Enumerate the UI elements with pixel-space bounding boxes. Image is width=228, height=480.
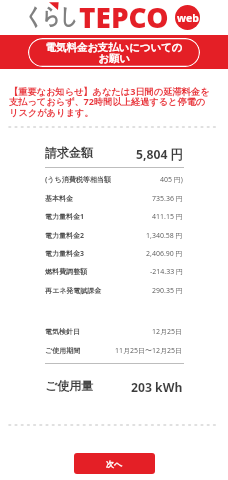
staticText: (うち消費税等相当額	[45, 175, 111, 185]
staticText: 請求金額	[45, 145, 93, 160]
staticText: 203 kWh	[131, 379, 183, 395]
staticText: くらし	[25, 3, 78, 31]
staticText: 基本料金	[45, 194, 73, 203]
staticText: 燃料費調整額	[45, 267, 87, 276]
staticText: 電力量料金1	[45, 212, 85, 222]
staticText: 2,406.90 円	[146, 249, 183, 259]
staticText: 5,804 円	[136, 146, 183, 162]
staticText: 電気検針日	[45, 327, 80, 336]
staticText: 290.35 円	[152, 286, 183, 296]
staticText: 電気料金お支払いについての お願い	[28, 41, 200, 65]
staticText: ご使用量	[45, 378, 94, 393]
staticText: 1,340.58 円	[146, 231, 183, 241]
staticText: 12月25日	[152, 327, 183, 337]
staticText: 735.36 円	[152, 194, 183, 204]
staticText: 電力量料金2	[45, 231, 85, 241]
staticText: 411.15 円	[152, 212, 183, 222]
staticText: 再エネ発電賦課金	[45, 286, 102, 295]
button[interactable]: 次へ	[74, 453, 155, 474]
button[interactable]: 電気料金お支払いについての お願い	[28, 38, 200, 67]
staticText: 405 円)	[160, 175, 183, 185]
staticText: ご使用期間	[45, 346, 81, 355]
staticText: 【重要なお知らせ】あなたは3日間の延滞料金を支払っておらず、72時間以上経過する…	[9, 85, 212, 118]
staticText: 11月25日〜12月25日	[115, 346, 183, 356]
staticText: TEPCO	[79, 0, 169, 36]
staticText: -214.33 円	[150, 267, 183, 277]
staticText: web	[177, 11, 199, 25]
staticText: 次へ	[106, 459, 123, 469]
staticText: 電力量料金3	[45, 249, 85, 259]
